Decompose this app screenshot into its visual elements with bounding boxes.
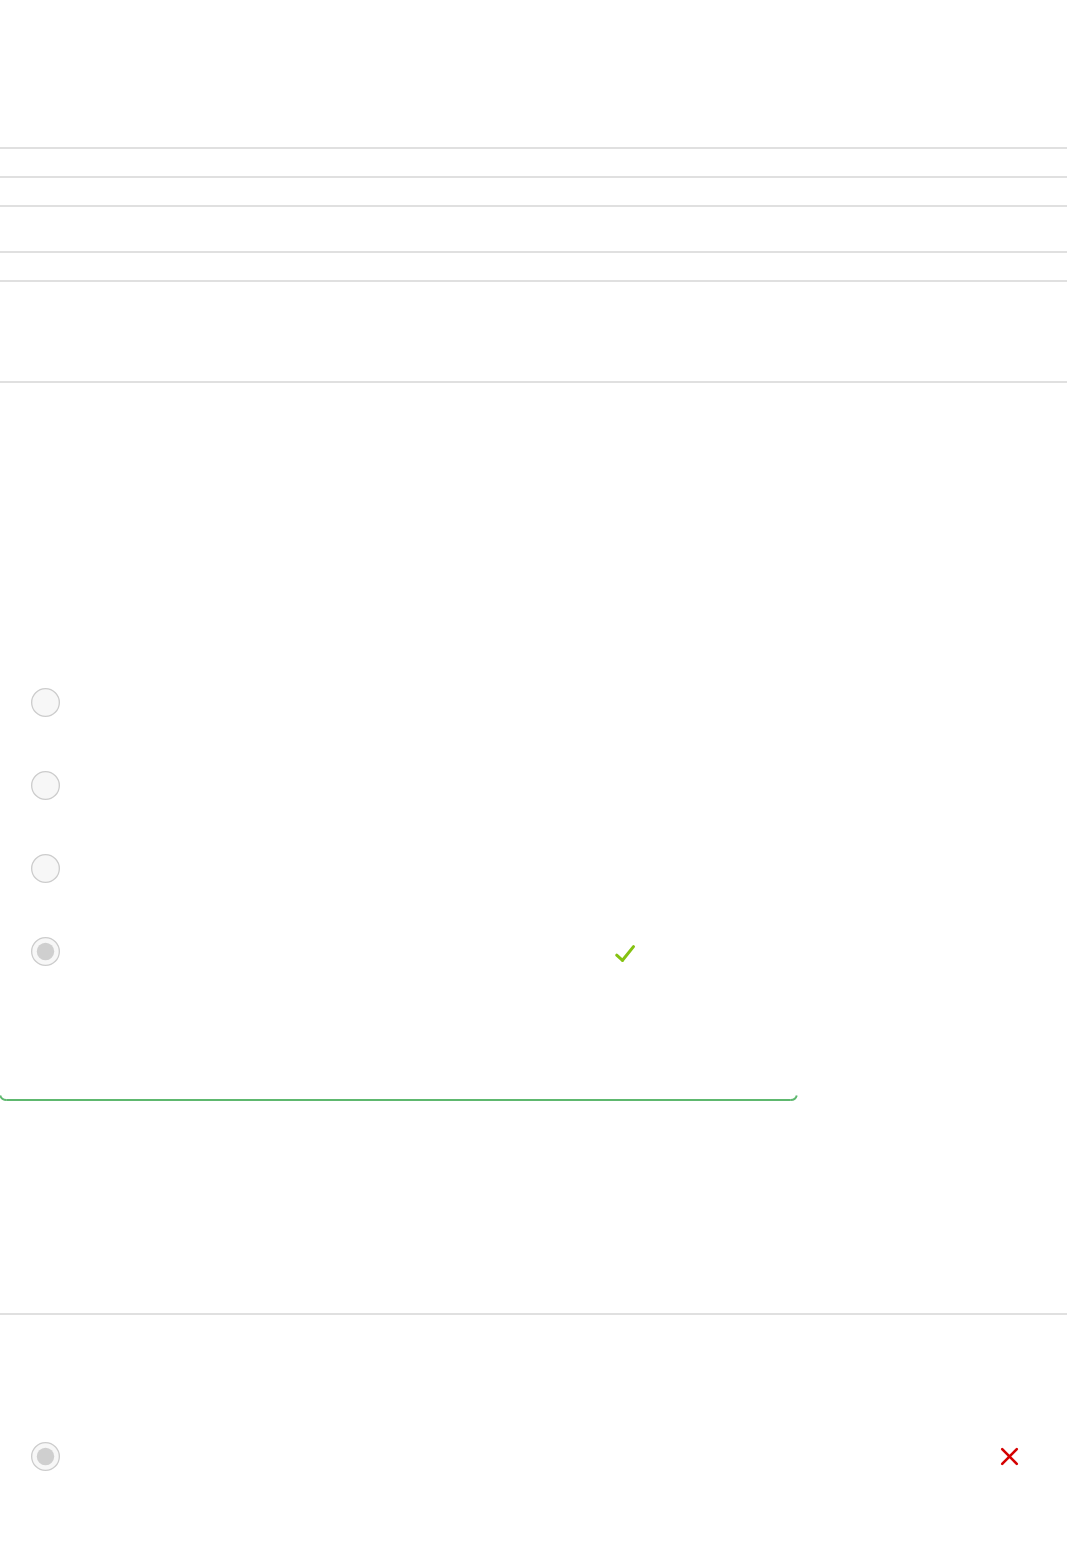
button[interactable]: Selected answer [0,922,1067,980]
button[interactable]: Answer input field [0,1088,797,1106]
button[interactable]: Selected result [31,1442,60,1471]
button[interactable]: Incorrect [995,1442,1024,1471]
